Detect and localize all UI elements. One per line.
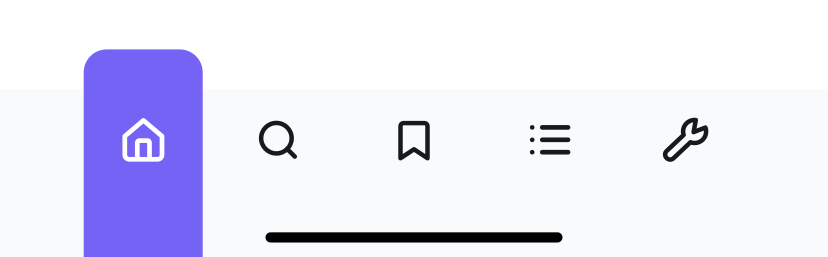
button[interactable]: Home <box>0 0 828 257</box>
button[interactable]: List <box>0 0 828 257</box>
button[interactable]: Search <box>0 0 828 257</box>
button[interactable]: Bookmarks <box>0 0 828 257</box>
button[interactable]: Tools <box>0 0 828 257</box>
